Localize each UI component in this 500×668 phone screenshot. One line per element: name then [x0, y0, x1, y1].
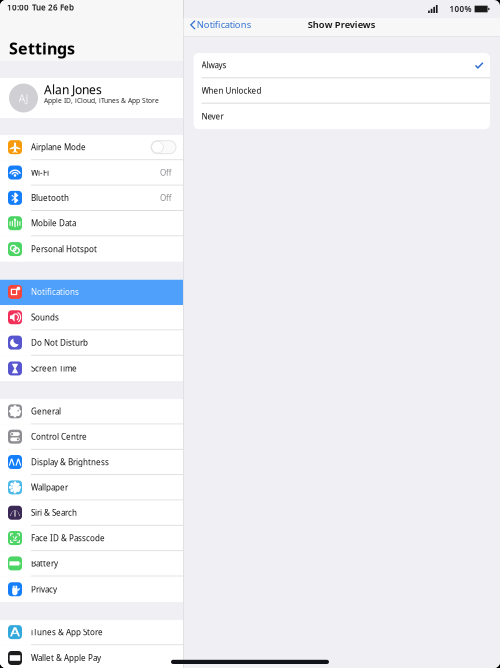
button[interactable]: AJ: [0, 78, 183, 118]
button[interactable]: Airplane Mode: [0, 135, 183, 160]
staticText: Wallpaper: [31, 482, 68, 493]
staticText: Wallet & Apple Pay: [31, 653, 101, 663]
staticText: 100%: [450, 4, 472, 14]
staticText: General: [31, 406, 61, 417]
staticText: Bluetooth: [31, 193, 69, 203]
staticText: Always: [202, 60, 227, 70]
staticText: Never: [202, 111, 224, 122]
staticText: Off: [160, 167, 172, 178]
button[interactable]: Always: [194, 53, 490, 78]
staticText: Tue 26 Feb: [32, 2, 74, 13]
button[interactable]: Notifications: [184, 16, 251, 33]
button[interactable]: Siri & Search: [0, 501, 183, 526]
button[interactable]: General: [0, 399, 183, 425]
button[interactable]: Control Centre: [0, 424, 183, 450]
button[interactable]: Personal Hotspot: [0, 236, 183, 262]
button[interactable]: Display & Brightness: [0, 450, 183, 475]
staticText: Control Centre: [31, 431, 87, 442]
staticText: Alan Jones: [44, 81, 102, 97]
button[interactable]: iTunes & App Store: [0, 620, 183, 645]
button[interactable]: Mobile Data: [0, 211, 183, 236]
staticText: Do Not Disturb: [31, 337, 88, 348]
staticText: Apple ID, iCloud, iTunes & App Store: [44, 96, 159, 105]
button[interactable]: When Unlocked: [194, 78, 490, 104]
staticText: Off: [160, 193, 172, 203]
staticText: Personal Hotspot: [31, 244, 97, 254]
staticText: Notifications: [31, 287, 79, 297]
staticText: Mobile Data: [31, 218, 76, 228]
button[interactable]: Face ID & Passcode: [0, 526, 183, 551]
staticText: Face ID & Passcode: [31, 533, 105, 543]
staticText: Settings: [9, 38, 75, 59]
staticText: Airplane Mode: [31, 142, 86, 152]
staticText: When Unlocked: [202, 85, 262, 96]
button[interactable]: Sounds: [0, 305, 183, 330]
staticText: Notifications: [197, 18, 251, 31]
staticText: Display & Brightness: [31, 457, 109, 467]
staticText: AJ: [18, 91, 28, 105]
staticText: iTunes & App Store: [31, 627, 103, 637]
button[interactable]: Never: [194, 104, 490, 129]
staticText: Privacy: [31, 584, 57, 595]
staticText: Show Previews: [308, 18, 376, 31]
button[interactable]: Battery: [0, 551, 183, 577]
button[interactable]: Do Not Disturb: [0, 330, 183, 356]
staticText: Wi-Fi: [31, 167, 49, 178]
staticText: Sounds: [31, 312, 59, 323]
staticText: Siri & Search: [31, 507, 77, 518]
button[interactable]: Wallet & Apple Pay: [0, 645, 183, 668]
button[interactable]: Privacy: [0, 577, 183, 602]
button[interactable]: Wallpaper: [0, 475, 183, 501]
button[interactable]: Bluetooth: [0, 186, 183, 211]
button[interactable]: Wi-Fi: [0, 160, 183, 186]
button[interactable]: Notifications: [0, 280, 183, 305]
staticText: Battery: [31, 558, 58, 569]
staticText: 10:00: [7, 2, 29, 13]
button[interactable]: Screen Time: [0, 356, 183, 381]
staticText: Screen Time: [31, 363, 77, 374]
